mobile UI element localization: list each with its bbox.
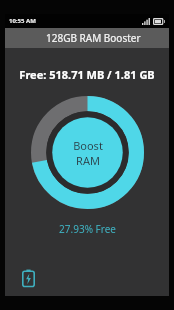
staticText: Free: 518.71 MB / 1.81 GB	[19, 67, 155, 82]
staticText: Boost	[73, 138, 103, 153]
staticText: 128GB RAM Booster	[46, 31, 141, 45]
button[interactable]: Boost	[31, 96, 144, 209]
staticText: 10:55 AM	[9, 17, 36, 25]
staticText: RAM	[76, 153, 100, 168]
button[interactable]: Battery Booster	[17, 267, 39, 289]
staticText: 27.93% Free	[59, 222, 116, 236]
button[interactable]: 128GB RAM Booster	[5, 28, 169, 48]
